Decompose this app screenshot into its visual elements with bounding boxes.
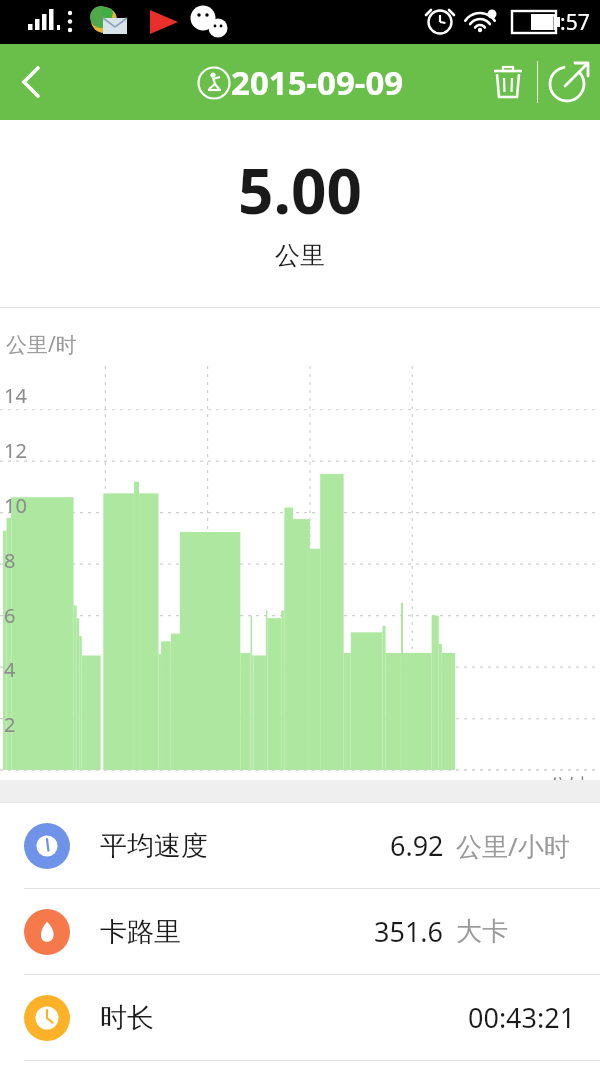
staticText: 40: [401, 774, 424, 801]
button[interactable]: Share: [538, 51, 600, 113]
staticText: 大卡: [456, 915, 576, 948]
button[interactable]: 卡路里: [0, 889, 600, 974]
staticText: 20: [196, 774, 219, 801]
button[interactable]: 平均速度: [0, 803, 600, 888]
staticText: 14: [4, 382, 27, 409]
staticText: 0: [0, 774, 12, 801]
staticText: 30: [299, 774, 322, 801]
staticText: 公里/小时: [456, 828, 576, 864]
staticText: 公里: [275, 240, 325, 271]
staticText: 卡路里: [100, 915, 181, 949]
staticText: 6: [4, 602, 16, 629]
button[interactable]: Back: [0, 51, 62, 113]
staticText: 21:57: [536, 8, 590, 37]
staticText: 公里/时: [6, 330, 77, 359]
staticText: 6.92: [390, 827, 444, 864]
staticText: 10: [94, 774, 117, 801]
staticText: 平均速度: [100, 829, 208, 863]
button[interactable]: 时长: [0, 975, 600, 1060]
button[interactable]: Delete: [479, 53, 537, 111]
staticText: 2015-09-09: [231, 60, 404, 105]
staticText: 5.00: [238, 148, 362, 232]
staticText: 4: [4, 656, 16, 683]
staticText: 分钟: [548, 774, 588, 799]
staticText: 00:43:21: [468, 999, 576, 1036]
staticText: 2: [4, 711, 16, 738]
staticText: 351.6: [374, 913, 444, 950]
staticText: 12: [4, 437, 27, 464]
staticText: 时长: [100, 1001, 154, 1035]
staticText: 8: [4, 547, 16, 574]
staticText: 10: [4, 492, 27, 519]
